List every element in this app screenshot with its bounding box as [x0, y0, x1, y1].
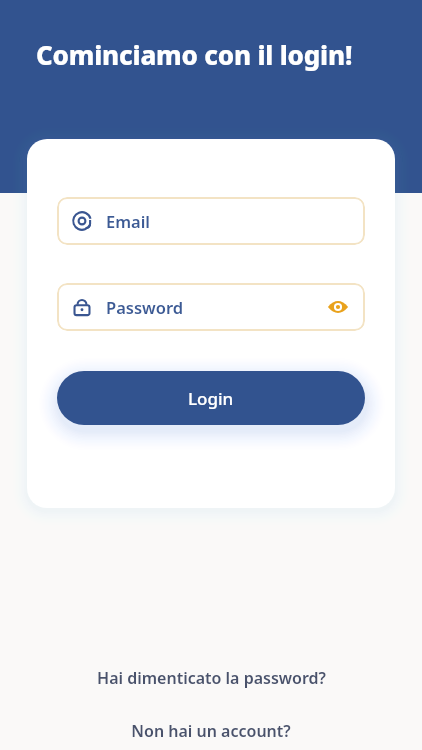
- staticText: Hai dimenticato la password?: [97, 667, 326, 689]
- staticText: Non hai un account?: [131, 720, 291, 742]
- button[interactable]: Hai dimenticato la password?: [0, 662, 422, 694]
- button[interactable]: Show password: [325, 294, 351, 320]
- staticText: Password: [106, 296, 184, 318]
- button[interactable]: Password: [57, 283, 365, 331]
- staticText: Email: [106, 210, 151, 232]
- button[interactable]: Non hai un account?: [0, 715, 422, 747]
- button[interactable]: Login: [57, 371, 365, 425]
- button[interactable]: Email: [57, 197, 365, 245]
- staticText: Cominciamo con il login!: [36, 37, 353, 72]
- staticText: Login: [188, 387, 234, 410]
